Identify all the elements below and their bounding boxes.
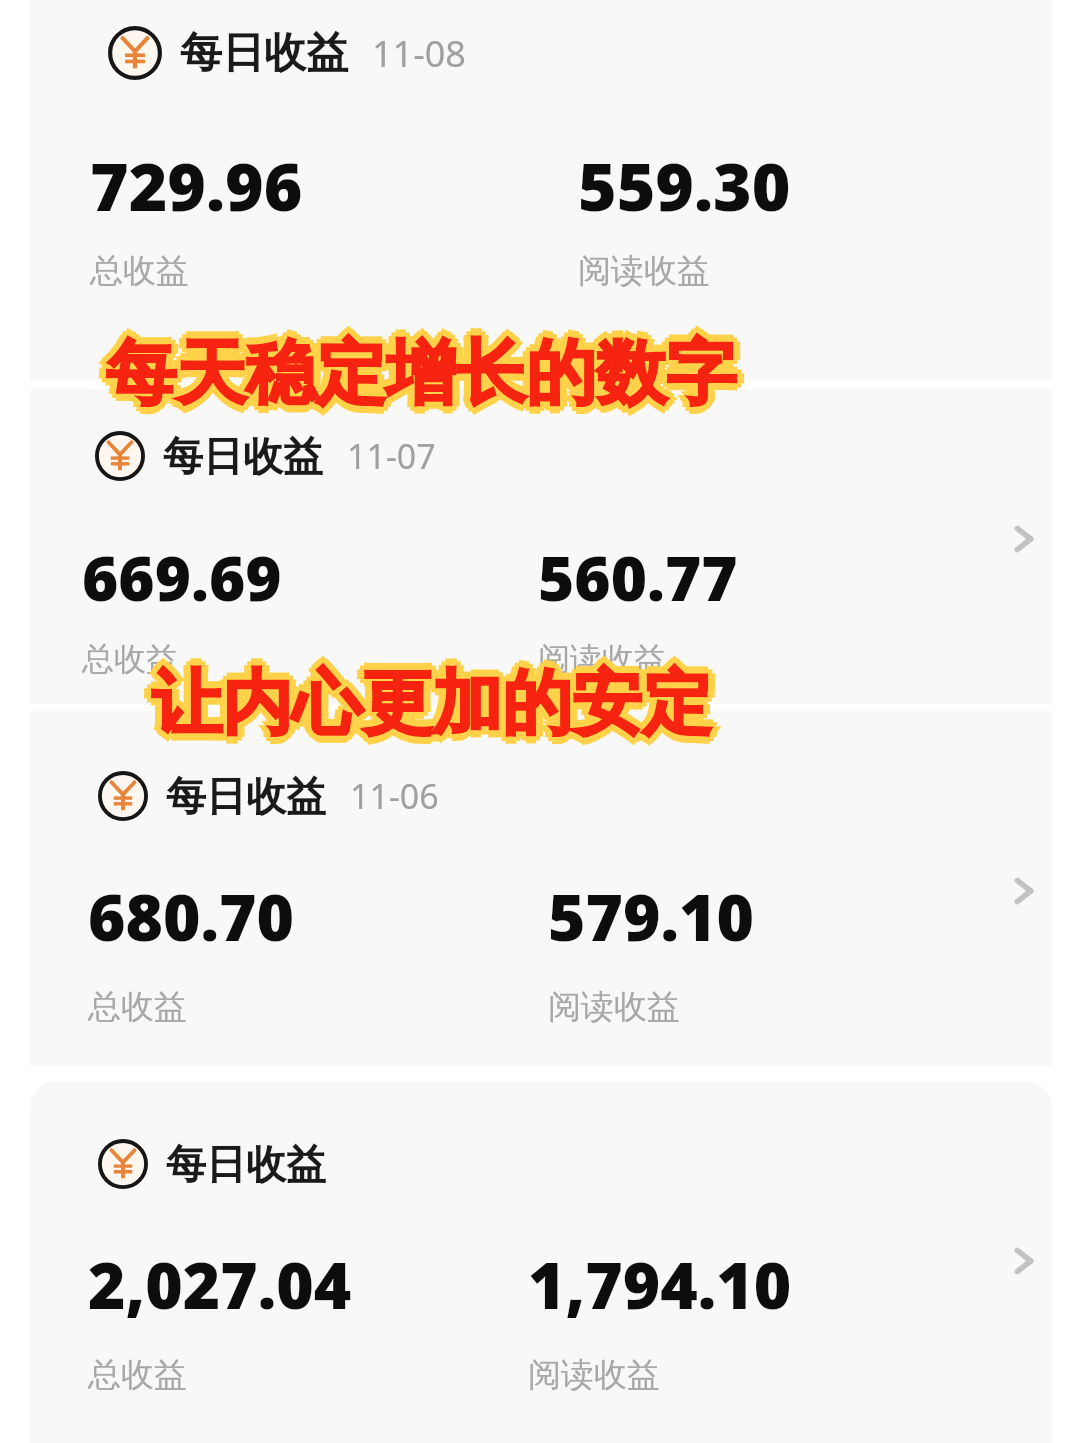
staticText: 让内心更加的安定 — [152, 655, 712, 743]
staticText: 让内心更加的安定 — [145, 660, 705, 748]
staticText: 729.96 — [90, 140, 303, 230]
staticText: 让内心更加的安定 — [159, 660, 719, 748]
staticText: 560.77 — [538, 535, 738, 619]
staticText: 2,027.04 — [88, 1241, 352, 1328]
staticText: 让内心更加的安定 — [152, 653, 712, 741]
staticText: 559.30 — [578, 140, 791, 230]
staticText: 总收益 — [88, 1354, 187, 1396]
staticText: 总收益 — [88, 986, 187, 1028]
staticText: 每天稳定增长的数字 — [113, 330, 743, 418]
staticText: 每天稳定增长的数字 — [106, 330, 736, 418]
button[interactable]: 每日收益 — [30, 711, 1052, 1066]
staticText: 总收益 — [82, 639, 178, 679]
staticText: 每天稳定增长的数字 — [110, 334, 740, 422]
staticText: 让内心更加的安定 — [156, 656, 716, 744]
staticText: 让内心更加的安定 — [156, 664, 716, 752]
staticText: 每天稳定增长的数字 — [110, 326, 740, 414]
staticText: 每天稳定增长的数字 — [106, 337, 736, 425]
staticText: 669.69 — [82, 535, 282, 619]
staticText: 阅读收益 — [538, 639, 666, 679]
staticText: 每天稳定增长的数字 — [99, 330, 729, 418]
staticText: 每天稳定增长的数字 — [102, 326, 732, 414]
staticText: 让内心更加的安定 — [152, 667, 712, 755]
staticText: 每天稳定增长的数字 — [101, 330, 731, 418]
button[interactable]: 每日收益 — [30, 389, 1052, 704]
staticText: 让内心更加的安定 — [152, 665, 712, 753]
staticText: 11-08 — [372, 29, 466, 78]
button[interactable]: 查看详情 — [1002, 517, 1046, 561]
button[interactable]: 查看详情 — [1002, 869, 1046, 913]
staticText: 阅读收益 — [548, 986, 680, 1028]
staticText: 每天稳定增长的数字 — [106, 323, 736, 411]
staticText: 每日收益 — [163, 431, 323, 481]
staticText: 让内心更加的安定 — [152, 660, 712, 748]
staticText: 阅读收益 — [578, 250, 710, 292]
staticText: 每日收益 — [166, 1139, 326, 1189]
button[interactable]: 每日收益 — [30, 0, 1052, 380]
staticText: 让内心更加的安定 — [157, 660, 717, 748]
button[interactable]: 每日收益 — [30, 1081, 1052, 1443]
staticText: 每天稳定增长的数字 — [106, 325, 736, 413]
staticText: 总收益 — [90, 250, 189, 292]
staticText: 每日收益 — [166, 771, 326, 821]
staticText: 让内心更加的安定 — [147, 660, 707, 748]
staticText: 让内心更加的安定 — [148, 656, 708, 744]
staticText: 让内心更加的安定 — [148, 664, 708, 752]
staticText: 每天稳定增长的数字 — [102, 334, 732, 422]
staticText: 1,794.10 — [528, 1241, 792, 1328]
staticText: 680.70 — [88, 873, 295, 960]
staticText: 每日收益 — [180, 27, 348, 80]
staticText: 每天稳定增长的数字 — [106, 335, 736, 423]
staticText: 每天稳定增长的数字 — [111, 330, 741, 418]
staticText: 579.10 — [548, 873, 755, 960]
staticText: 11-06 — [350, 773, 439, 819]
staticText: 阅读收益 — [528, 1354, 660, 1396]
button[interactable]: 查看详情 — [1002, 1239, 1046, 1283]
staticText: 11-07 — [347, 433, 436, 479]
